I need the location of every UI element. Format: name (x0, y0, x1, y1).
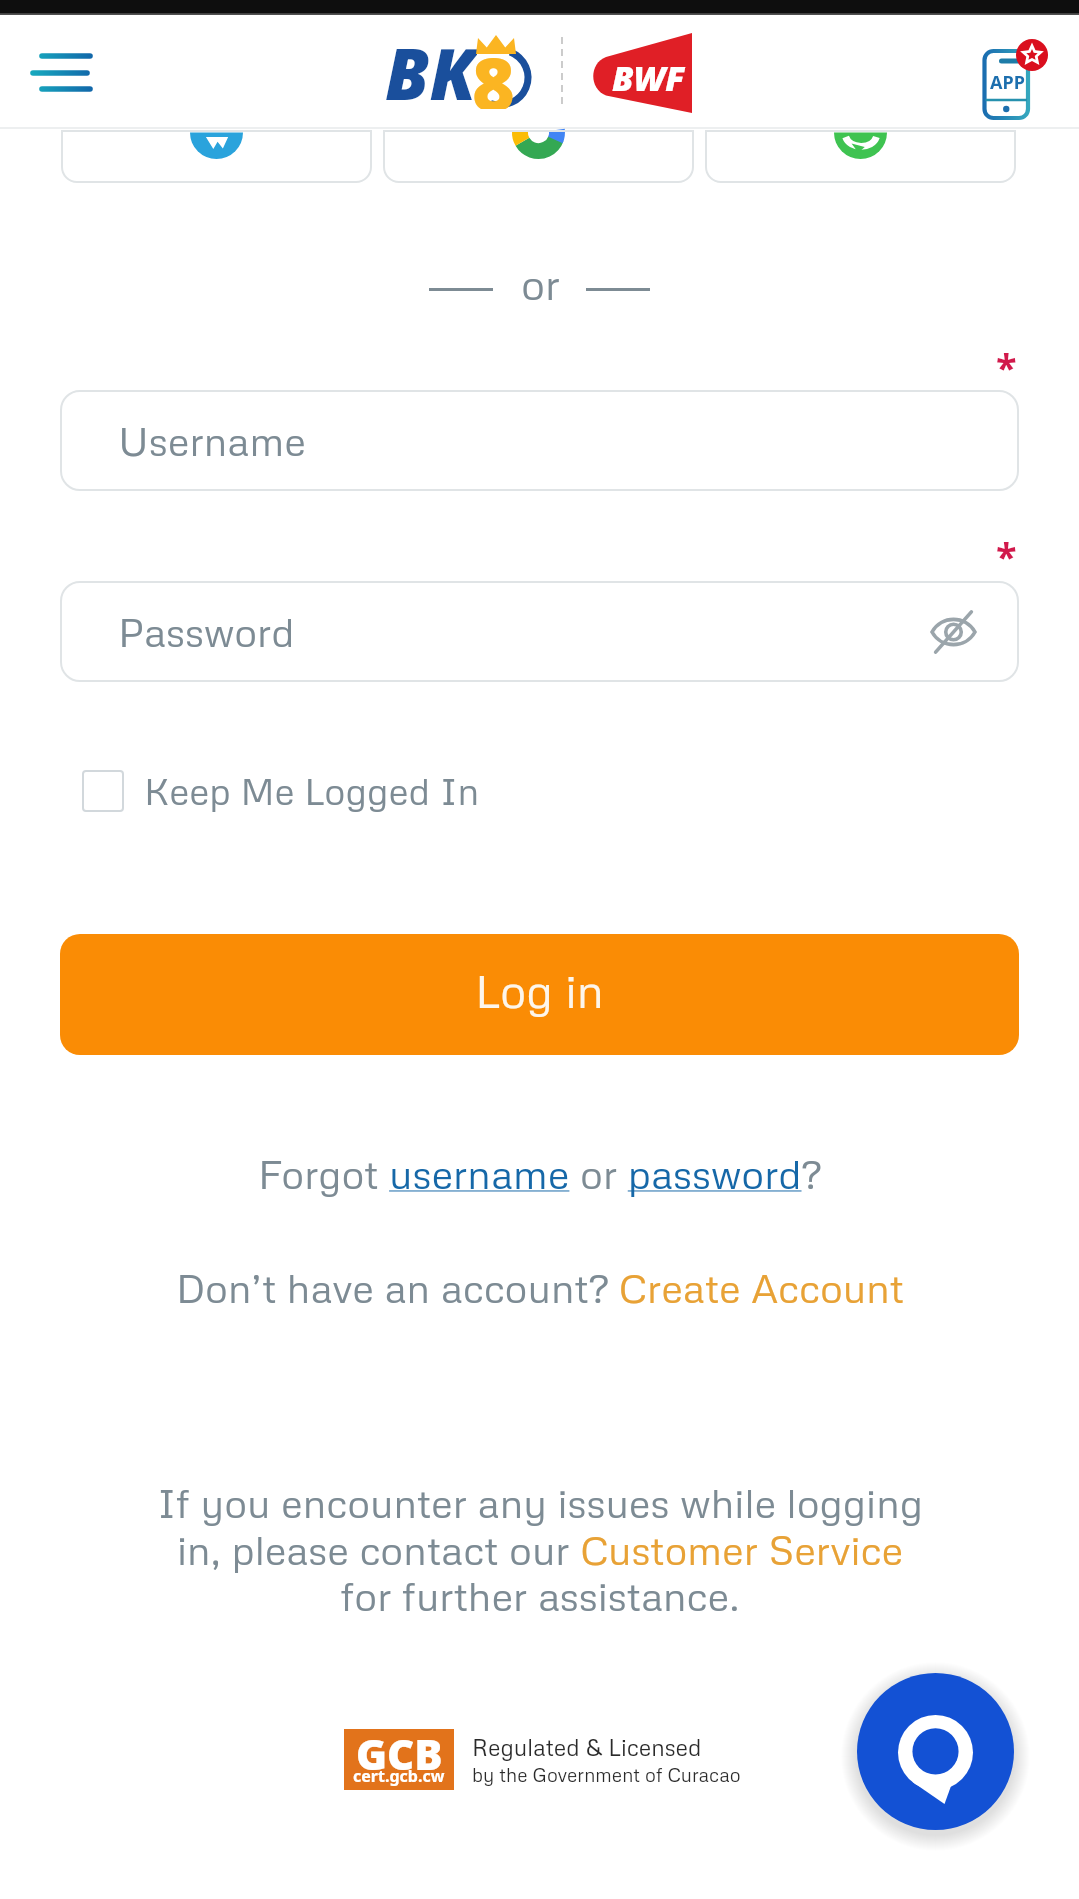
staticText: BK (385, 25, 477, 101)
button[interactable]: Curacao gaming licence (344, 1729, 454, 1790)
button[interactable]: Username (60, 390, 1019, 491)
staticText: cert.gcb.cw (353, 1765, 445, 1787)
button[interactable]: Sign in with WhatsApp (705, 130, 1016, 183)
button[interactable]: Show password (920, 599, 986, 665)
staticText: * (996, 530, 1017, 582)
button[interactable]: Don’t have an account? Create Account (176, 1263, 904, 1312)
staticText: Username (118, 416, 306, 465)
button[interactable]: Sign in with Google (383, 130, 694, 183)
staticText: * (996, 341, 1017, 393)
button[interactable]: Password (60, 581, 1019, 682)
button[interactable]: Forgot username or password? (258, 1149, 822, 1198)
staticText: or (521, 258, 561, 310)
staticText: by the Government of Curacao (472, 1763, 741, 1786)
staticText: Log in (475, 962, 604, 1019)
staticText: Keep Me Logged In (144, 768, 480, 814)
staticText: Password (118, 607, 295, 656)
staticText: APP (990, 70, 1025, 95)
button[interactable]: Menu (0, 26, 120, 116)
button[interactable]: Live chat (857, 1673, 1014, 1830)
staticText: BWF (612, 55, 685, 101)
button[interactable]: Log in (60, 934, 1019, 1055)
staticText: 8 (472, 33, 515, 109)
staticText: Regulated & Licensed (472, 1733, 702, 1761)
button[interactable]: Keep Me Logged In (82, 766, 480, 816)
button[interactable]: Download app (963, 22, 1069, 120)
staticText: GCB (356, 1725, 443, 1782)
staticText: If you encounter any issues while loggin… (157, 1478, 923, 1620)
button[interactable]: Sign in with Telegram (61, 130, 372, 183)
